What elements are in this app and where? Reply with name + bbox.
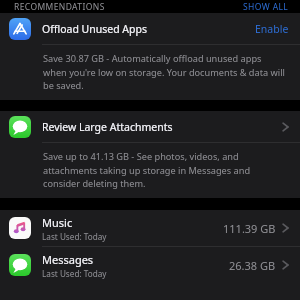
staticText: Last Used: Today (42, 268, 107, 279)
staticText: Review Large Attachments (42, 120, 282, 134)
staticText: Save 30.87 GB - Automatically offload un… (43, 52, 286, 91)
button[interactable]: Review Large Attachments (0, 111, 300, 142)
staticText: Save up to 41.13 GB - See photos, videos… (43, 150, 286, 189)
staticText: RECOMMENDATIONS (14, 1, 243, 13)
staticText: Messages (42, 252, 94, 267)
button[interactable]: Offload Unused Apps (0, 13, 300, 44)
staticText: Enable (255, 22, 289, 36)
staticText: SHOW ALL (243, 1, 289, 13)
button[interactable]: SHOW ALL (243, 1, 289, 13)
staticText: Last Used: Today (42, 231, 107, 242)
staticText: Music (42, 215, 73, 230)
staticText: Offload Unused Apps (42, 22, 255, 36)
staticText: 26.38 GB (229, 258, 276, 273)
button[interactable]: Messages (0, 247, 300, 283)
button[interactable]: Music (0, 210, 300, 246)
staticText: 111.39 GB (223, 221, 276, 236)
